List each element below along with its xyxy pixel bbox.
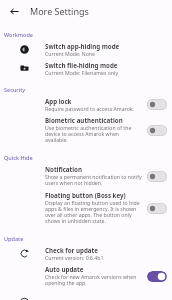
staticText: Current Mode: None bbox=[45, 50, 95, 57]
button[interactable]: Biometric authentication bbox=[0, 114, 172, 146]
staticText: Update bbox=[4, 235, 24, 242]
staticText: Notification bbox=[45, 165, 82, 173]
staticText: Biometric authentication bbox=[45, 116, 123, 124]
staticText: Check for update bbox=[45, 246, 98, 254]
button[interactable]: Notification bbox=[0, 163, 172, 189]
button[interactable]: Off bbox=[147, 171, 167, 182]
staticText: Current Mode: Filenames only bbox=[45, 69, 119, 76]
button[interactable]: Auto update bbox=[0, 263, 172, 289]
button[interactable]: Off bbox=[147, 125, 167, 136]
button[interactable]: App lock bbox=[0, 95, 172, 114]
button[interactable]: Switch app-hiding mode bbox=[0, 40, 172, 59]
staticText: Current version: 0.6.4b1 bbox=[45, 254, 104, 261]
staticText: More Settings bbox=[30, 5, 89, 17]
staticText: Require password to access Amarok. bbox=[45, 105, 134, 112]
staticText: Workmode bbox=[4, 31, 33, 38]
button[interactable]: Off bbox=[147, 203, 167, 214]
staticText: Display an floating button used to hide … bbox=[45, 199, 142, 225]
button[interactable]: Check for update bbox=[0, 244, 172, 263]
button[interactable]: Off bbox=[147, 99, 167, 110]
staticText: App lock bbox=[45, 97, 72, 105]
staticText: Security bbox=[4, 86, 26, 93]
staticText: Quick Hide bbox=[4, 154, 33, 161]
staticText: Switch file-hiding mode bbox=[45, 61, 118, 69]
button[interactable]: On bbox=[147, 271, 167, 282]
staticText: Switch app-hiding mode bbox=[45, 42, 120, 50]
staticText: Show a permanent notification to notify … bbox=[45, 173, 142, 187]
staticText: Floating button (Boss key) bbox=[45, 191, 126, 199]
staticText: Auto update bbox=[45, 265, 84, 273]
button[interactable]: Switch file-hiding mode bbox=[0, 59, 172, 78]
button[interactable]: Back bbox=[5, 2, 23, 20]
staticText: Check for new Amarok versions when openi… bbox=[45, 273, 142, 287]
staticText: Use biometric authentication of the devi… bbox=[45, 124, 142, 144]
button[interactable]: Floating button (Boss key) bbox=[0, 189, 172, 227]
